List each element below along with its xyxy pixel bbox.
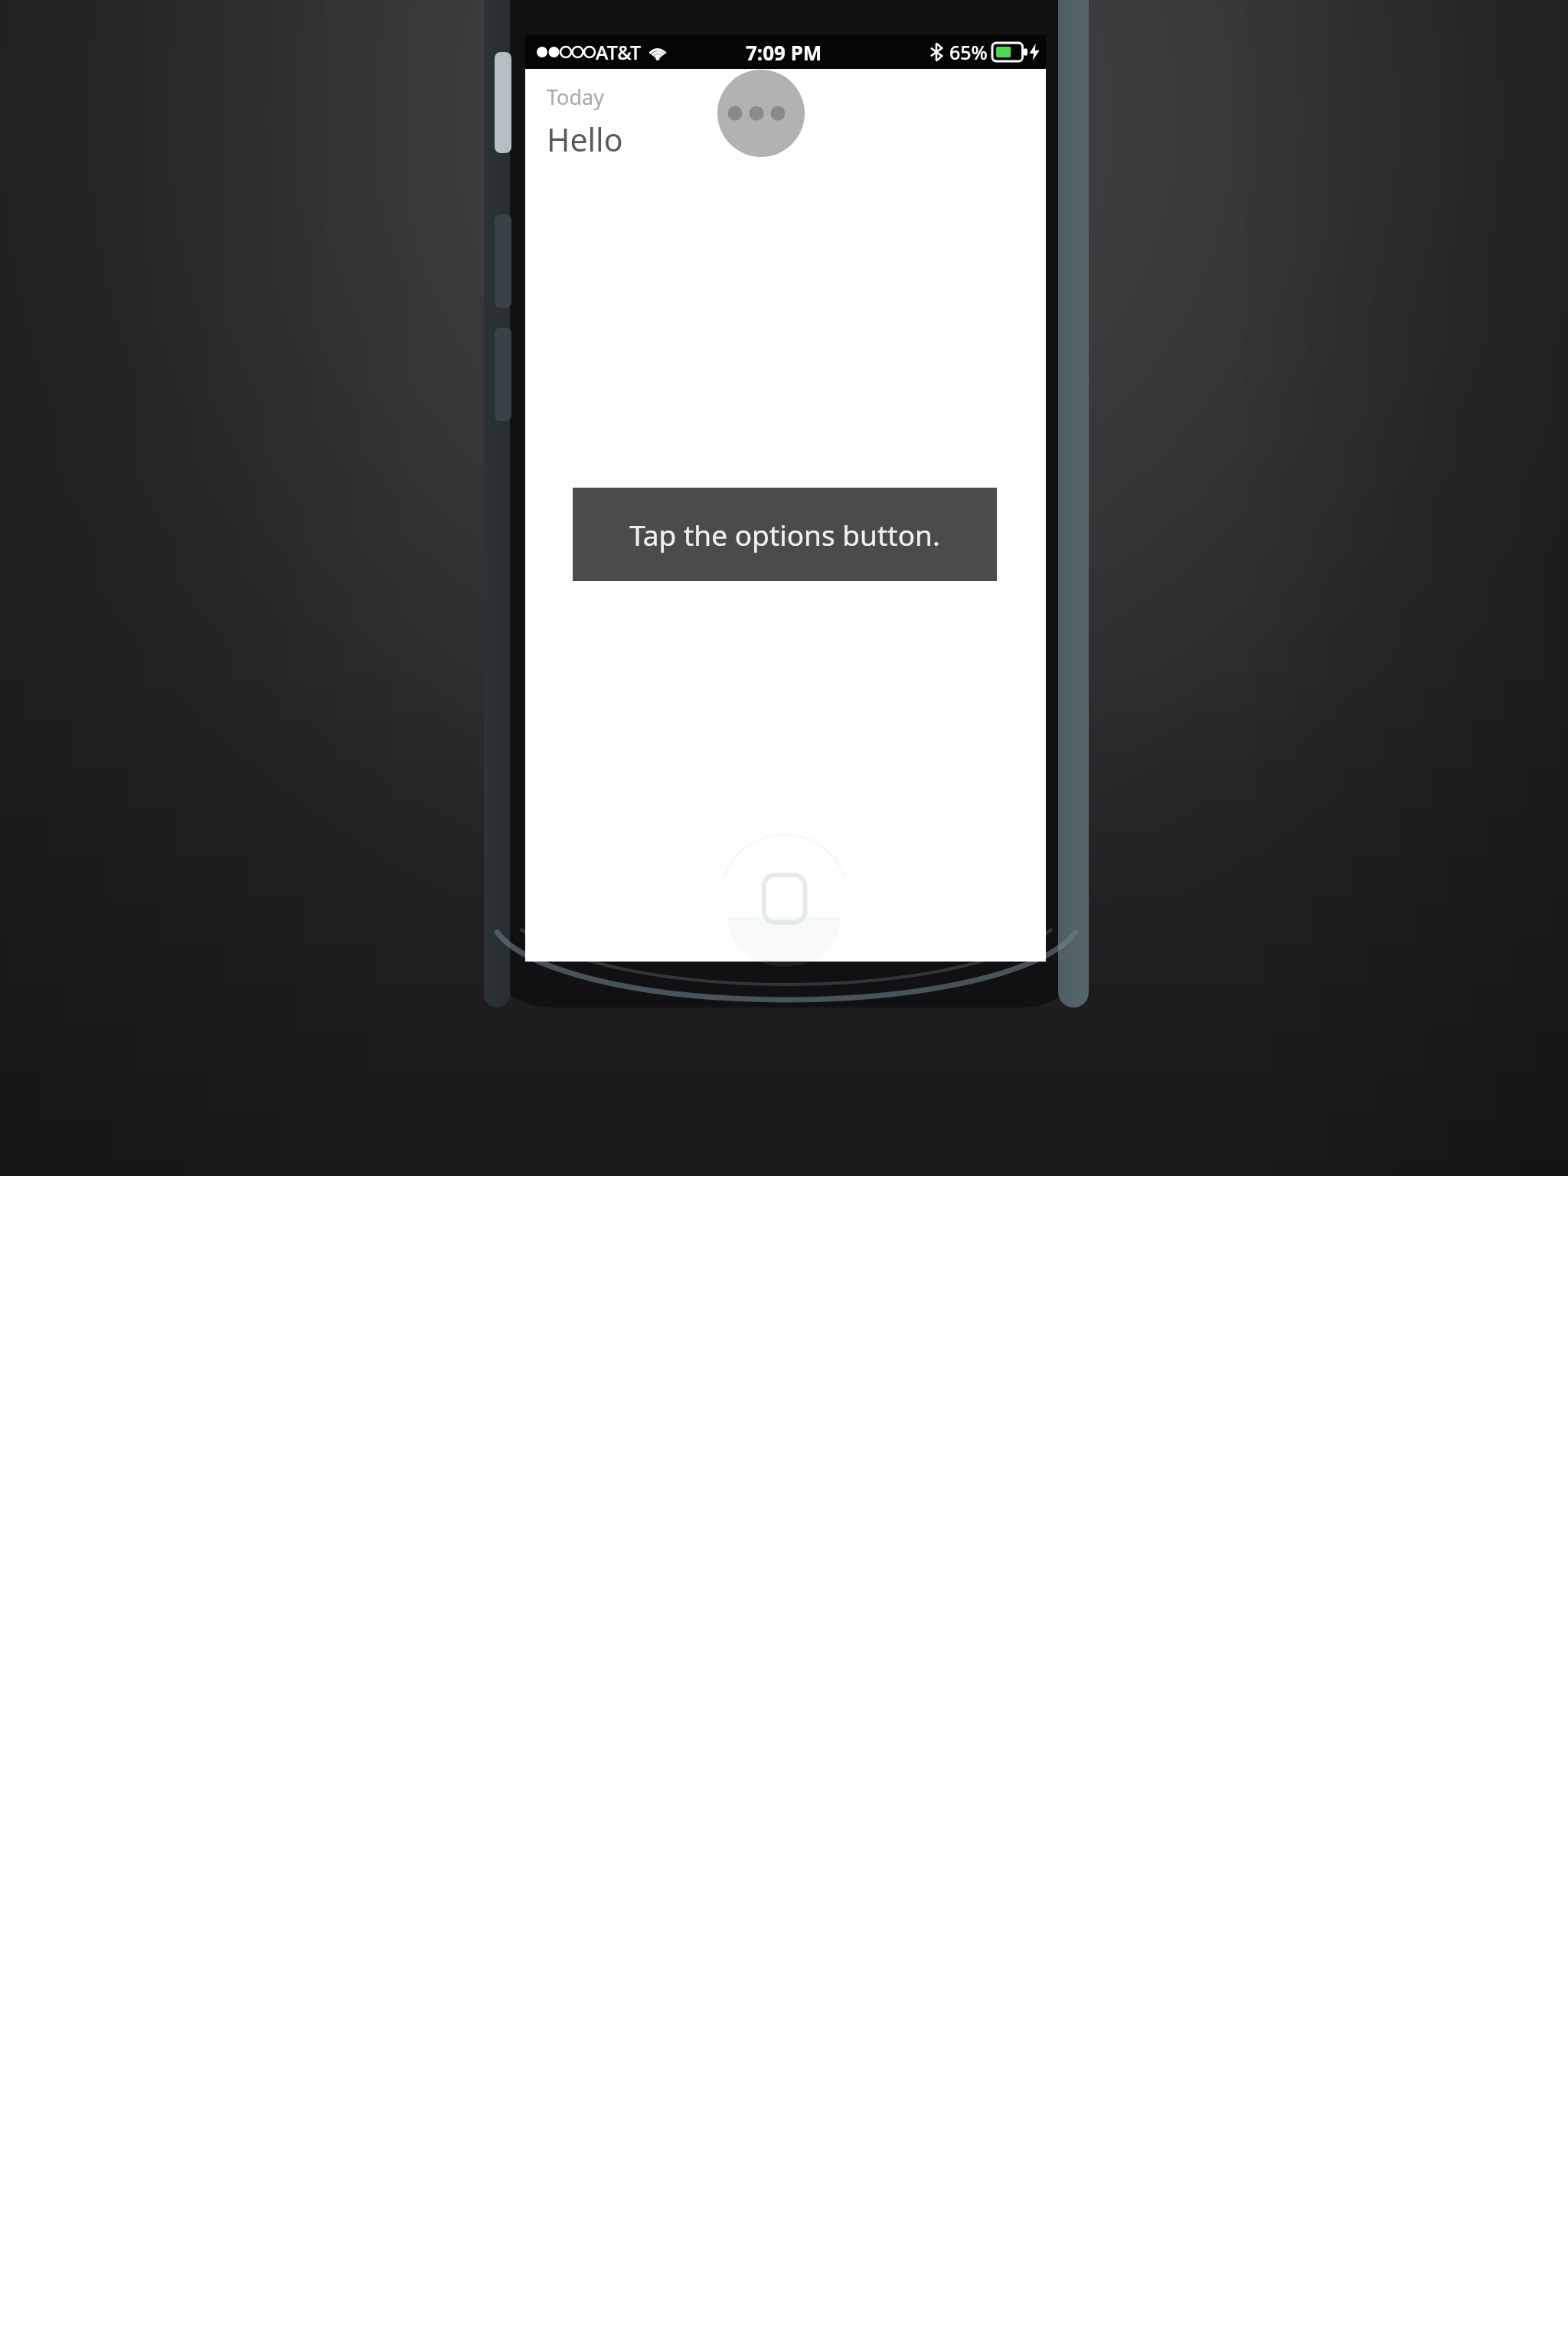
staticText: Today (547, 83, 604, 111)
staticText: 65% (949, 39, 988, 65)
staticText: AT&T (596, 39, 642, 65)
staticText: 7:09 PM (746, 39, 822, 66)
button[interactable]: Options (717, 70, 805, 157)
staticText: Tap the options button. (629, 515, 940, 553)
staticText: Hello (547, 118, 623, 161)
button[interactable]: Tap the options button. (573, 488, 997, 581)
